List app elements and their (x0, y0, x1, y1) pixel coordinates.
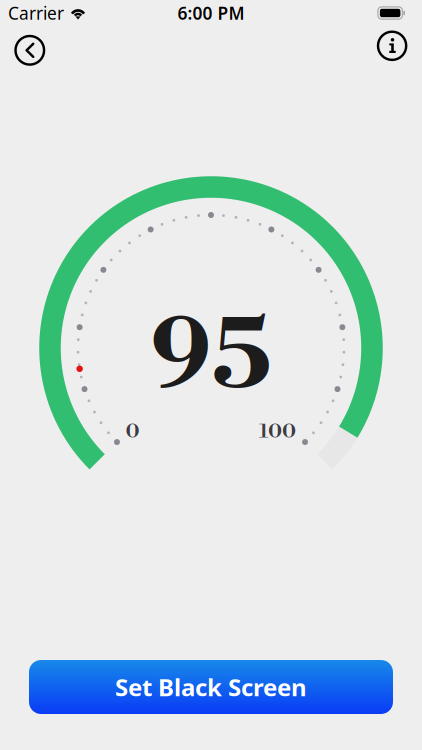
button[interactable]: Back (0, 26, 56, 74)
staticText: 100 (259, 419, 296, 444)
staticText: 0 (125, 419, 139, 444)
staticText: 95 (150, 297, 271, 419)
button[interactable]: Set Black Screen (29, 660, 393, 714)
button[interactable]: Information (366, 26, 422, 73)
staticText: 6:00 PM (177, 1, 244, 24)
staticText: Carrier (8, 1, 64, 24)
staticText: Set Black Screen (115, 671, 307, 703)
